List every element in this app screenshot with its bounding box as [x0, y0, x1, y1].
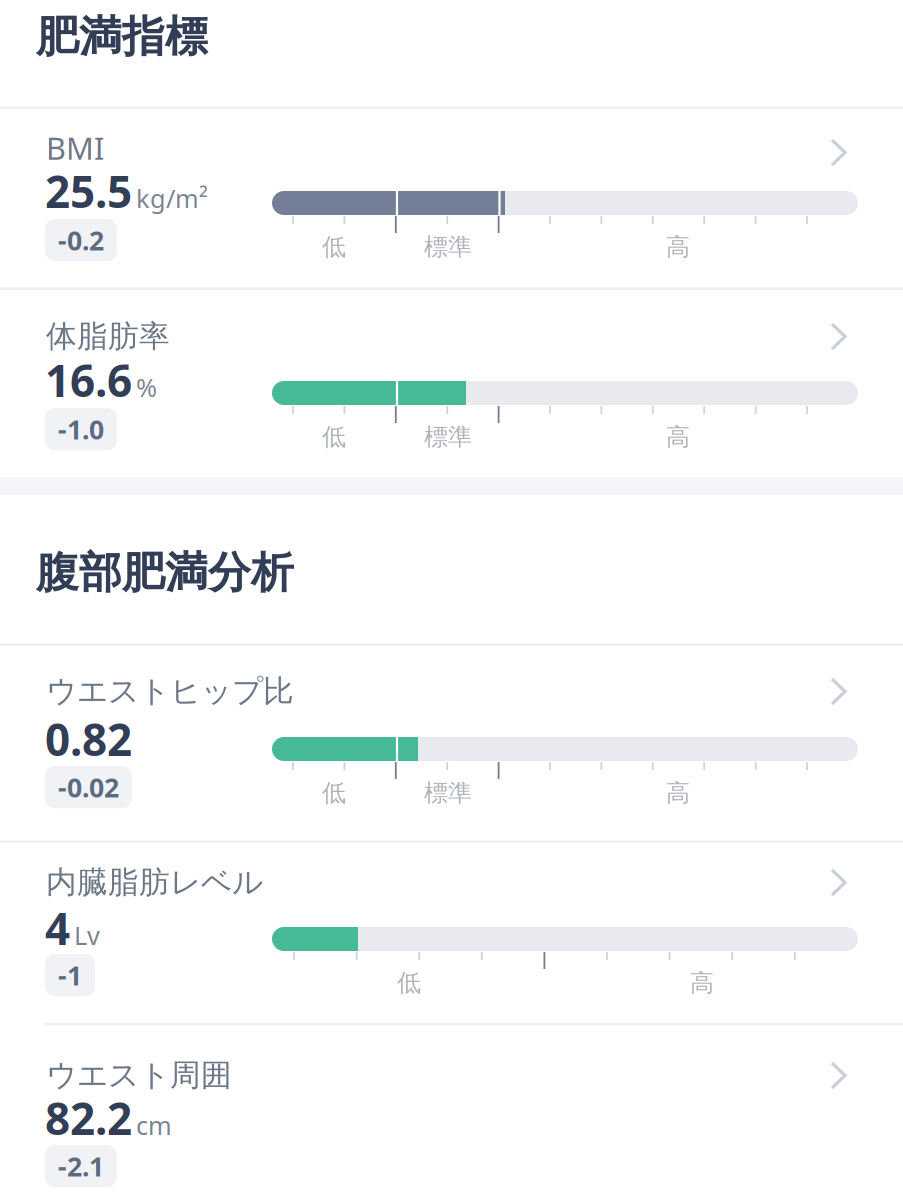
- button[interactable]: 内臓脂肪レベル: [0, 0, 903, 1200]
- staticText: 肥満指標: [36, 10, 208, 64]
- staticText: 標準: [424, 232, 472, 262]
- staticText: 高: [690, 968, 714, 998]
- staticText: 低: [322, 778, 346, 808]
- staticText: BMI: [46, 127, 104, 169]
- staticText: 内臓脂肪レベル: [46, 863, 263, 902]
- staticText: 0.82: [45, 709, 132, 769]
- staticText: 82.2: [45, 1088, 132, 1148]
- staticText: 16.6: [45, 350, 132, 410]
- staticText: kg/m²: [136, 181, 208, 215]
- staticText: 低: [322, 232, 346, 262]
- staticText: ウエストヒップ比: [46, 672, 294, 711]
- staticText: 高: [666, 778, 690, 808]
- staticText: 25.5: [45, 161, 132, 221]
- staticText: cm: [136, 1108, 172, 1142]
- staticText: 高: [666, 422, 690, 452]
- staticText: 標準: [424, 778, 472, 808]
- staticText: Lv: [74, 918, 100, 952]
- staticText: 高: [666, 232, 690, 262]
- button[interactable]: ウエスト周囲: [0, 0, 903, 1200]
- staticText: ウエスト周囲: [46, 1056, 232, 1095]
- staticText: 4: [45, 898, 70, 958]
- staticText: 腹部肥満分析: [36, 546, 294, 600]
- staticText: 体脂肪率: [46, 317, 170, 356]
- staticText: -0.02: [58, 769, 119, 805]
- staticText: 低: [397, 968, 421, 998]
- staticText: 低: [322, 422, 346, 452]
- staticText: -1: [58, 957, 82, 993]
- staticText: -2.1: [58, 1148, 104, 1184]
- button[interactable]: BMI: [0, 0, 903, 1200]
- staticText: %: [136, 370, 157, 404]
- staticText: -0.2: [58, 222, 104, 258]
- staticText: -1.0: [58, 411, 104, 447]
- staticText: 標準: [424, 422, 472, 452]
- button[interactable]: ウエストヒップ比: [0, 0, 903, 1200]
- button[interactable]: 体脂肪率: [0, 0, 903, 1200]
